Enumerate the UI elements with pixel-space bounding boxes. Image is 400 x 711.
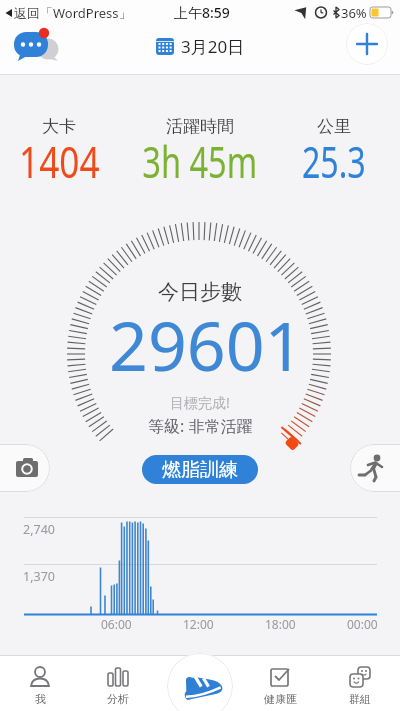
button[interactable] <box>156 37 175 56</box>
staticText: 公里 <box>317 116 351 137</box>
staticText: 1,370 <box>23 568 55 585</box>
staticText: 等級: 非常活躍 <box>148 415 253 437</box>
staticText: 今日步數 <box>158 279 242 305</box>
staticText: 大卡 <box>42 116 76 137</box>
staticText: 25.3 <box>302 131 366 191</box>
staticText: 2,740 <box>23 521 55 538</box>
button[interactable] <box>350 444 400 492</box>
staticText: 分析 <box>107 692 129 706</box>
button[interactable] <box>346 23 388 65</box>
staticText: 36% <box>341 4 367 22</box>
staticText: 群組 <box>349 692 371 706</box>
button[interactable]: 群組 <box>328 665 392 706</box>
staticText: 目標完成! <box>170 393 230 412</box>
staticText: 18:00 <box>265 616 296 632</box>
staticText: 上午8:59 <box>174 3 230 22</box>
staticText: 1404 <box>19 131 100 191</box>
staticText: 活躍時間 <box>166 116 234 137</box>
button[interactable]: 分析 <box>86 665 150 706</box>
staticText: 健康匯 <box>264 692 297 706</box>
button[interactable] <box>167 653 233 711</box>
staticText: 返回「WordPress」 <box>14 4 132 22</box>
staticText: 3月20日 <box>181 35 245 58</box>
button[interactable]: 我 <box>8 665 72 706</box>
button[interactable] <box>12 28 64 64</box>
staticText: 12:00 <box>183 616 214 632</box>
staticText: 00:00 <box>347 616 378 632</box>
staticText: 06:00 <box>101 616 132 632</box>
staticText: 3h 45m <box>142 131 258 191</box>
staticText: 我 <box>35 692 46 706</box>
staticText: 29601 <box>109 298 304 391</box>
staticText: 燃脂訓練 <box>162 458 238 482</box>
button[interactable]: 燃脂訓練 <box>142 455 258 484</box>
button[interactable]: 健康匯 <box>248 665 312 706</box>
button[interactable] <box>0 444 50 492</box>
